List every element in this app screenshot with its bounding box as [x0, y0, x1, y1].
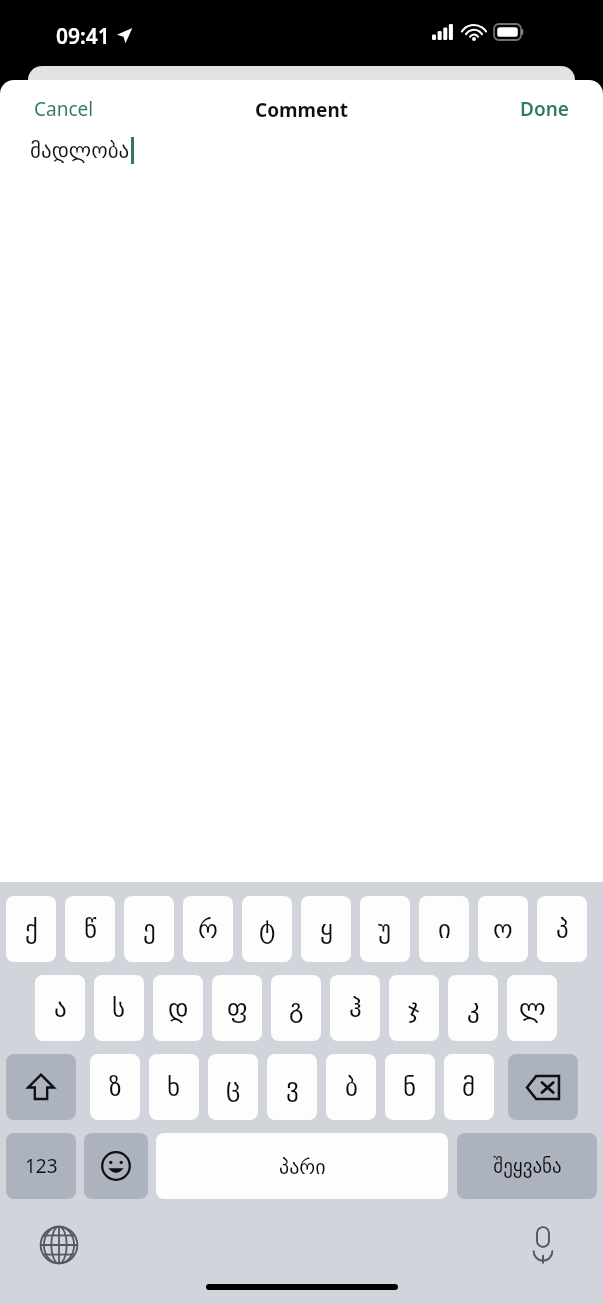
staticText: 123 [25, 1153, 58, 1179]
staticText: ფ [227, 994, 248, 1023]
button[interactable]: ა [35, 975, 85, 1041]
staticText: ნ [403, 1073, 417, 1102]
button[interactable]: ს [94, 975, 144, 1041]
staticText: ი [438, 915, 451, 944]
staticText: მადლობა [30, 139, 130, 163]
button[interactable]: რ [183, 896, 233, 962]
button[interactable]: ყ [301, 896, 351, 962]
button[interactable]: ე [124, 896, 174, 962]
staticText: 09:41 [56, 22, 110, 51]
staticText: დ [168, 994, 189, 1023]
staticText: ჰ [349, 994, 362, 1023]
staticText: პ [556, 915, 569, 944]
staticText: Cancel [34, 96, 94, 122]
button[interactable]: ი [419, 896, 469, 962]
staticText: Comment [255, 97, 349, 123]
staticText: წ [84, 915, 97, 944]
staticText: რ [198, 915, 218, 944]
staticText: ხ [167, 1073, 181, 1102]
button[interactable]: ჰ [330, 975, 380, 1041]
staticText: ჯ [408, 994, 420, 1023]
button[interactable]: 123 [6, 1133, 76, 1199]
button[interactable]: ხ [149, 1054, 199, 1120]
button[interactable]: Cancel [18, 88, 110, 130]
button[interactable]: Done [504, 88, 585, 130]
button[interactable]: ო [478, 896, 528, 962]
button[interactable]: პ [537, 896, 587, 962]
button[interactable]: ბ [326, 1054, 376, 1120]
button[interactable]: ზ [90, 1054, 140, 1120]
staticText: ს [112, 994, 126, 1023]
staticText: ბ [345, 1073, 358, 1102]
button[interactable]: ლ [507, 975, 557, 1041]
button[interactable]: Shift [6, 1054, 76, 1120]
button[interactable]: შეყვანა [457, 1133, 597, 1199]
staticText: ე [143, 915, 156, 944]
staticText: ზ [109, 1073, 122, 1102]
staticText: შეყვანა [493, 1155, 562, 1177]
staticText: პარი [279, 1155, 326, 1178]
button[interactable]: გ [271, 975, 321, 1041]
button[interactable]: კ [448, 975, 498, 1041]
staticText: ც [226, 1073, 241, 1102]
button[interactable]: წ [65, 896, 115, 962]
staticText: ო [493, 915, 513, 944]
staticText: კ [467, 994, 480, 1023]
staticText: ა [54, 994, 67, 1023]
staticText: ვ [286, 1073, 299, 1102]
staticText: ტ [259, 915, 276, 944]
button[interactable]: მ [444, 1054, 494, 1120]
button[interactable]: დ [153, 975, 203, 1041]
button[interactable]: ვ [267, 1054, 317, 1120]
button[interactable]: ტ [242, 896, 292, 962]
button[interactable]: ნ [385, 1054, 435, 1120]
staticText: ლ [519, 994, 546, 1023]
button[interactable]: ქ [6, 896, 56, 962]
button[interactable]: Emoji [84, 1133, 148, 1199]
button[interactable]: ფ [212, 975, 262, 1041]
staticText: მ [462, 1073, 476, 1102]
button[interactable]: ც [208, 1054, 258, 1120]
button[interactable]: უ [360, 896, 410, 962]
button[interactable]: Backspace [508, 1054, 578, 1120]
button[interactable]: Switch keyboard language [36, 1222, 82, 1268]
staticText: უ [378, 915, 392, 944]
staticText: ქ [25, 915, 38, 944]
staticText: Done [520, 96, 569, 122]
button[interactable]: პარი [156, 1133, 448, 1199]
button[interactable]: Dictation [520, 1222, 566, 1268]
staticText: ყ [320, 915, 333, 944]
button[interactable]: ჯ [389, 975, 439, 1041]
staticText: გ [289, 994, 304, 1023]
